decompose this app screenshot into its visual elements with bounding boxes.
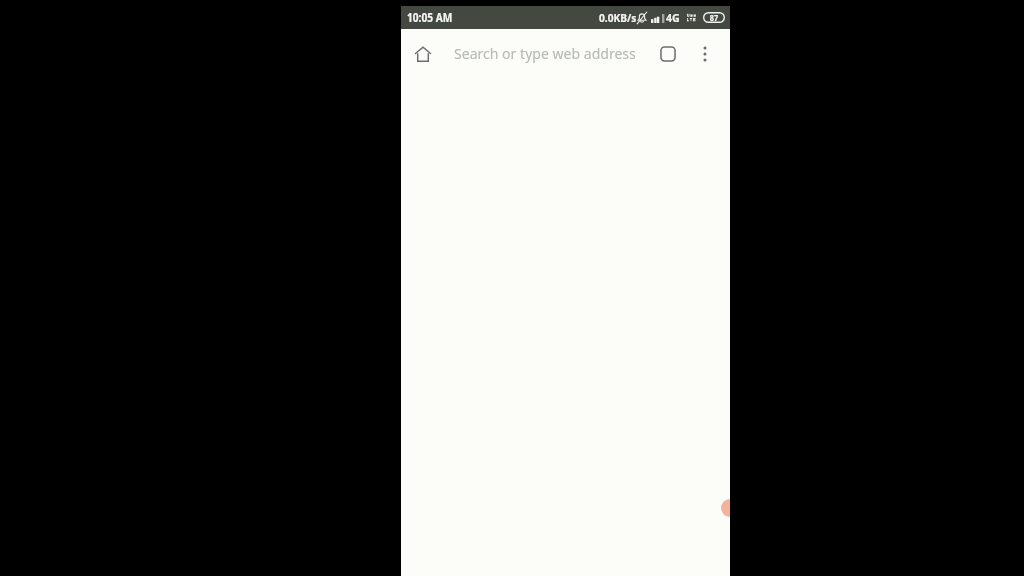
- staticText: 87: [710, 12, 718, 23]
- button[interactable]: Home: [407, 38, 439, 70]
- button[interactable]: Action: [721, 499, 739, 517]
- button[interactable]: More options: [689, 38, 721, 70]
- button[interactable]: Tabs: [652, 38, 684, 70]
- button[interactable]: Search or type web address: [448, 38, 648, 70]
- staticText: Search or type web address: [454, 44, 636, 63]
- staticText: 4G: [666, 10, 680, 26]
- staticText: 0.0KB/s: [599, 10, 637, 26]
- staticText: 10:05 AM: [407, 10, 452, 26]
